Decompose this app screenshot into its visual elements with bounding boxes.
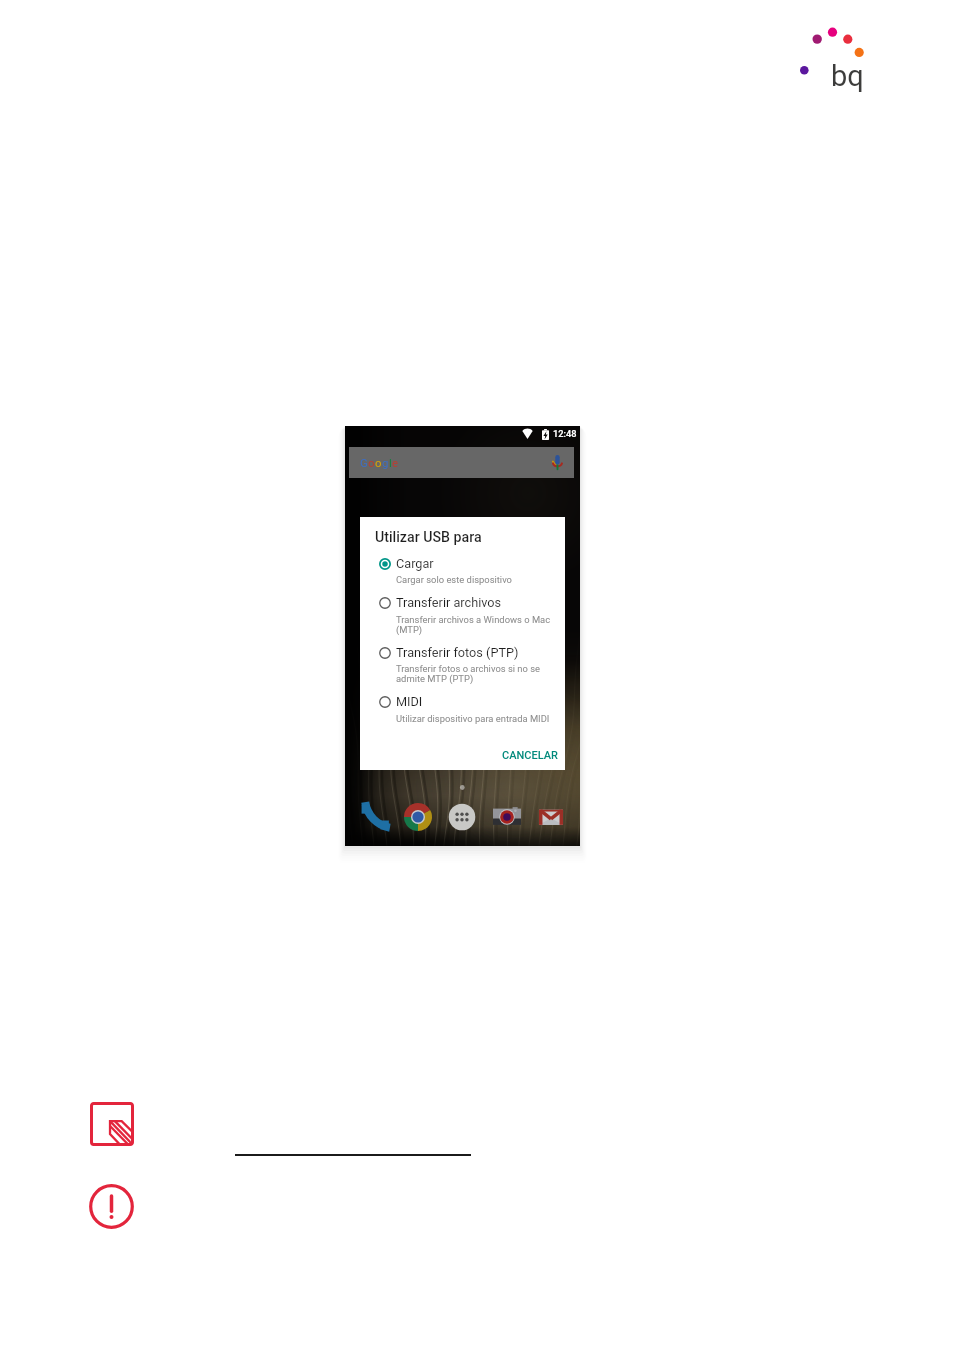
button[interactable]: G: [349, 447, 574, 478]
staticText: o: [368, 456, 375, 469]
staticText: CANCELAR: [502, 749, 558, 762]
staticText: Utilizar USB para: [375, 529, 482, 546]
button[interactable]: Cargar: [364, 554, 561, 574]
button[interactable]: Note: [90, 1102, 134, 1146]
button[interactable]: Warning: [89, 1184, 134, 1229]
button[interactable]: Voice search: [552, 454, 563, 470]
staticText: g: [382, 456, 389, 469]
staticText: Cargar: [396, 556, 434, 571]
button[interactable]: Chrome: [404, 803, 432, 831]
staticText: o: [375, 456, 382, 469]
staticText: Transferir fotos o archivos si no se adm…: [396, 663, 541, 684]
button[interactable]: Phone: [361, 803, 389, 831]
button[interactable]: Gmail: [537, 803, 565, 831]
button[interactable]: Transferir archivos: [364, 593, 561, 613]
staticText: Transferir archivos a Windows o Mac (MTP…: [396, 614, 551, 635]
staticText: MIDI: [396, 694, 423, 709]
staticText: l: [389, 456, 392, 469]
staticText: Transferir fotos (PTP): [396, 645, 519, 660]
staticText: 12:48: [553, 428, 577, 439]
button[interactable]: CANCELAR: [498, 746, 562, 765]
staticText: Cargar solo este dispositivo: [396, 574, 512, 585]
staticText: Utilizar dispositivo para entrada MIDI: [396, 713, 550, 724]
button[interactable]: MIDI: [364, 692, 561, 712]
staticText: G: [360, 456, 368, 469]
staticText: Transferir archivos: [396, 595, 502, 610]
button[interactable]: Camera: [493, 803, 521, 831]
staticText: e: [392, 456, 399, 469]
button[interactable]: bq logo: [795, 20, 875, 96]
button[interactable]: Apps: [448, 803, 476, 831]
button[interactable]: Transferir fotos (PTP): [364, 643, 561, 663]
staticText: bq: [831, 59, 864, 93]
